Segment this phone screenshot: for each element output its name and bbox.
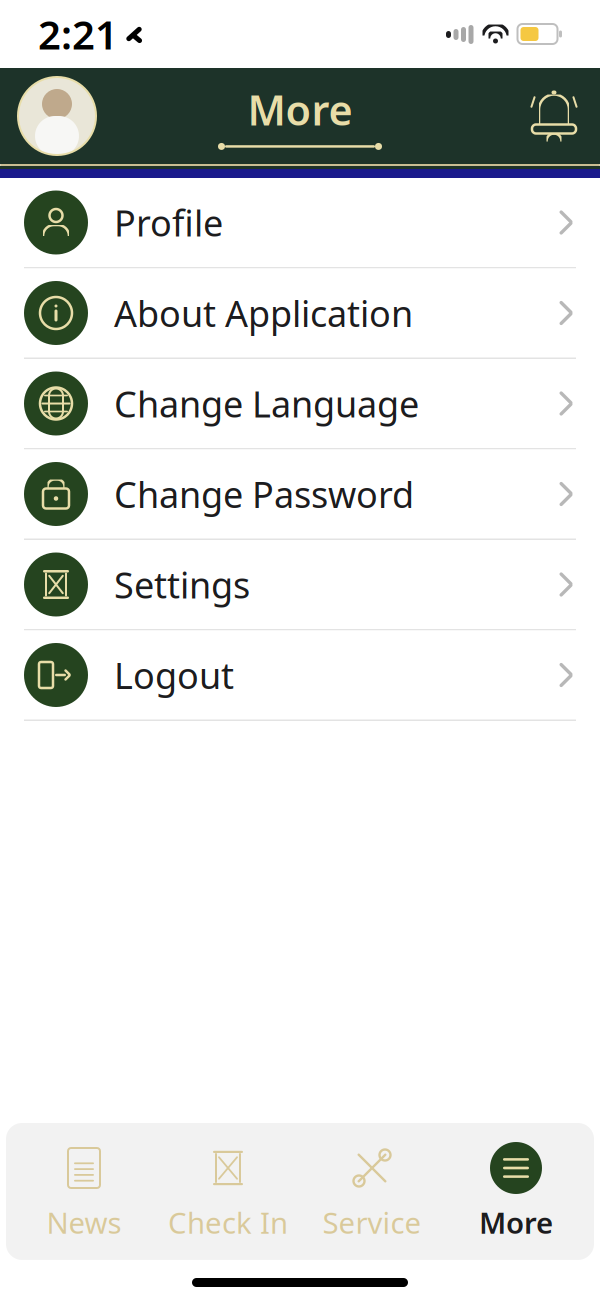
staticText: About Application: [114, 289, 413, 337]
button[interactable]: About Application: [0, 268, 600, 357]
button[interactable]: More: [444, 1129, 588, 1254]
staticText: News: [46, 1203, 121, 1242]
button[interactable]: Profile: [0, 178, 600, 267]
staticText: Profile: [114, 199, 223, 246]
staticText: More: [247, 82, 352, 137]
staticText: Logout: [114, 651, 234, 699]
staticText: Change Language: [114, 380, 419, 427]
staticText: More: [479, 1203, 553, 1242]
staticText: Check In: [168, 1203, 288, 1242]
button[interactable]: Profile photo: [18, 77, 96, 155]
button[interactable]: Check In: [156, 1129, 300, 1254]
button[interactable]: Service: [300, 1129, 444, 1254]
staticText: Settings: [114, 561, 250, 608]
staticText: Change Password: [114, 470, 414, 518]
button[interactable]: Settings: [0, 540, 600, 629]
button[interactable]: Change Password: [0, 449, 600, 538]
staticText: 2:21: [38, 7, 118, 60]
button[interactable]: Logout: [0, 630, 600, 719]
button[interactable]: Notifications: [526, 88, 582, 144]
button[interactable]: News: [12, 1129, 156, 1254]
staticText: Service: [322, 1203, 421, 1242]
button[interactable]: Change Language: [0, 359, 600, 448]
